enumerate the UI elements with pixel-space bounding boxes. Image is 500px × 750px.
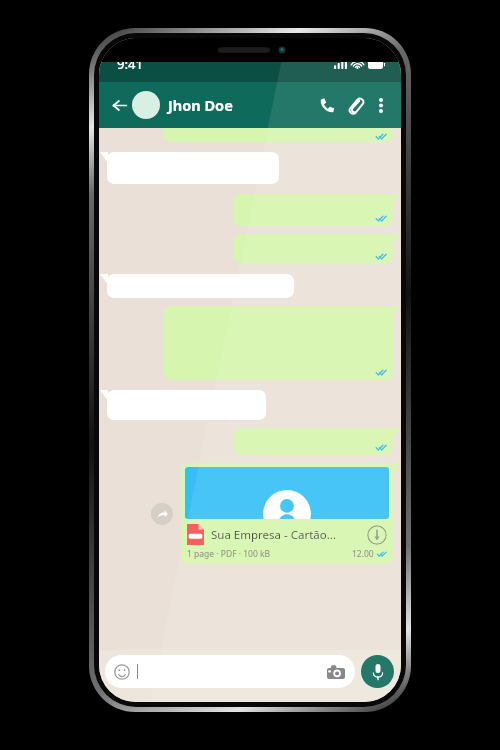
- button[interactable]: [164, 128, 393, 142]
- button[interactable]: [164, 306, 393, 380]
- button[interactable]: Record voice message: [361, 655, 394, 688]
- button[interactable]: Voice call: [313, 91, 341, 119]
- button[interactable]: [107, 274, 294, 298]
- staticText: 1 page · PDF · 100 kB: [187, 548, 271, 560]
- button[interactable]: Back: [107, 93, 131, 117]
- staticText: 12.00: [352, 548, 374, 560]
- button[interactable]: Attach: [341, 91, 369, 119]
- button[interactable]: [234, 234, 393, 264]
- button[interactable]: Forward: [151, 503, 173, 525]
- button[interactable]: [234, 428, 393, 455]
- button[interactable]: [107, 390, 266, 420]
- button[interactable]: More options: [369, 93, 393, 117]
- button[interactable]: Jhon Doe: [168, 95, 313, 115]
- button[interactable]: Camera: [105, 655, 355, 688]
- button[interactable]: Profile photo: [132, 91, 160, 119]
- staticText: Sua Empresa - Cartão...: [211, 527, 363, 543]
- button[interactable]: Camera: [326, 662, 346, 682]
- staticText: 9:41: [117, 55, 143, 73]
- button[interactable]: [234, 194, 393, 226]
- button[interactable]: Download: [367, 525, 387, 545]
- button[interactable]: Sua Empresa - Cartão...: [181, 463, 393, 564]
